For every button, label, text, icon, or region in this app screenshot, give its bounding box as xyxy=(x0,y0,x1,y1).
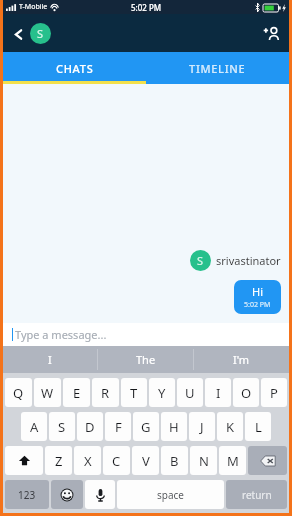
staticText: space xyxy=(157,488,184,502)
button[interactable]: P xyxy=(261,378,287,407)
button[interactable]: I xyxy=(3,346,97,373)
staticText: D xyxy=(85,418,95,436)
staticText: V xyxy=(142,452,150,470)
staticText: J xyxy=(200,418,204,436)
staticText: I'm xyxy=(233,352,250,367)
button[interactable]: Add person xyxy=(259,21,283,45)
staticText: R xyxy=(101,384,110,402)
button[interactable]: Y xyxy=(149,378,175,407)
button[interactable]: J xyxy=(189,412,215,441)
staticText: F xyxy=(115,418,122,436)
button[interactable]: X xyxy=(74,446,101,475)
staticText: The xyxy=(136,352,156,367)
staticText: Z xyxy=(55,452,63,470)
button[interactable]: D xyxy=(77,412,103,441)
staticText: 5:02 PM xyxy=(131,2,162,13)
button[interactable]: N xyxy=(190,446,217,475)
staticText: Hi xyxy=(252,284,263,299)
button[interactable]: Backspace xyxy=(248,446,287,475)
staticText: U xyxy=(185,384,195,402)
staticText: I xyxy=(216,384,221,402)
staticText: return xyxy=(242,488,272,502)
button[interactable]: Type a message... xyxy=(3,323,289,346)
staticText: P xyxy=(270,384,278,402)
staticText: N xyxy=(199,452,209,470)
button[interactable]: The xyxy=(98,346,193,373)
staticText: M xyxy=(227,452,239,470)
staticText: 123 xyxy=(18,488,36,502)
staticText: Y xyxy=(158,384,166,402)
button[interactable]: S xyxy=(49,412,75,441)
button[interactable]: Shift xyxy=(5,446,43,475)
staticText: H xyxy=(169,418,179,436)
staticText: S xyxy=(37,26,44,41)
staticText: Q xyxy=(13,384,24,402)
button[interactable]: Emoji xyxy=(51,480,83,509)
staticText: C xyxy=(112,452,121,470)
staticText: Type a message... xyxy=(15,327,107,342)
button[interactable]: T xyxy=(121,378,147,407)
staticText: 5:02 PM xyxy=(244,300,271,310)
button[interactable]: Voice input xyxy=(85,480,115,509)
staticText: K xyxy=(226,418,235,436)
staticText: X xyxy=(84,452,92,470)
button[interactable]: U xyxy=(177,378,203,407)
button[interactable]: F xyxy=(105,412,131,441)
staticText: L xyxy=(255,418,262,436)
staticText: B xyxy=(170,452,179,470)
staticText: I xyxy=(48,352,52,367)
button[interactable]: S xyxy=(190,250,211,271)
staticText: T-Mobile xyxy=(19,2,48,12)
staticText: A xyxy=(30,418,39,436)
button[interactable]: B xyxy=(161,446,188,475)
staticText: E xyxy=(73,384,81,402)
button[interactable]: Hi xyxy=(234,280,281,314)
staticText: CHATS xyxy=(56,61,94,76)
staticText: T xyxy=(130,384,138,402)
staticText: S xyxy=(197,253,204,268)
button[interactable]: TIMELINE xyxy=(146,52,289,84)
button[interactable]: W xyxy=(34,378,61,407)
button[interactable]: O xyxy=(233,378,259,407)
button[interactable]: CHATS xyxy=(3,52,146,84)
staticText: srivastinator xyxy=(216,253,281,268)
staticText: W xyxy=(41,384,54,402)
button[interactable]: G xyxy=(133,412,159,441)
button[interactable]: L xyxy=(245,412,271,441)
staticText: O xyxy=(241,384,252,402)
button[interactable]: space xyxy=(117,480,224,509)
button[interactable]: K xyxy=(217,412,243,441)
button[interactable]: Q xyxy=(5,378,32,407)
button[interactable]: E xyxy=(63,378,90,407)
button[interactable]: Back xyxy=(8,24,28,44)
button[interactable]: return xyxy=(226,480,287,509)
button[interactable]: 123 xyxy=(5,480,49,509)
button[interactable]: C xyxy=(103,446,130,475)
staticText: TIMELINE xyxy=(189,61,246,76)
button[interactable]: V xyxy=(132,446,159,475)
button[interactable]: I'm xyxy=(194,346,289,373)
button[interactable]: I xyxy=(205,378,231,407)
button[interactable]: R xyxy=(92,378,119,407)
button[interactable]: Z xyxy=(45,446,72,475)
button[interactable]: S xyxy=(30,23,51,44)
button[interactable]: A xyxy=(21,412,47,441)
button[interactable]: H xyxy=(161,412,187,441)
staticText: S xyxy=(58,418,66,436)
staticText: G xyxy=(141,418,151,436)
button[interactable]: M xyxy=(219,446,246,475)
